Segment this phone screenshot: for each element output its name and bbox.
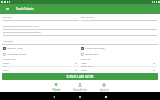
staticText: Sehir (Birden fazla icin virgulle ayirin… bbox=[3, 25, 40, 28]
staticText: Universite bbox=[3, 40, 13, 43]
button[interactable]: SONUCLARI GETIR bbox=[2, 73, 158, 80]
staticText: Favorilerim bbox=[73, 88, 87, 92]
button[interactable]: Ayarlar bbox=[92, 80, 116, 92]
staticText: Yil bbox=[3, 65, 6, 68]
staticText: Max Siralama bbox=[81, 16, 95, 19]
staticText: Ve ucretsiz olanlar bbox=[7, 53, 27, 56]
button[interactable]: Bolum Tipi bbox=[81, 65, 157, 74]
staticText: Siralama Tipi bbox=[3, 58, 16, 61]
button[interactable]: Filtrele bbox=[44, 80, 68, 92]
button[interactable]: Back bbox=[41, 92, 67, 100]
button[interactable]: Home bbox=[67, 92, 93, 100]
button[interactable]: Puan Tipi bbox=[81, 58, 157, 67]
button[interactable]: Yil bbox=[3, 65, 79, 74]
staticText: SONUCLARI GETIR bbox=[66, 75, 94, 79]
staticText: Bolum Tipi bbox=[81, 65, 92, 68]
button[interactable]: Max Siralama bbox=[81, 16, 157, 21]
staticText: Ucretli (Ile birlikte) bbox=[85, 47, 105, 50]
button[interactable]: Open navigation drawer bbox=[0, 4, 14, 14]
staticText: Min Puan bbox=[3, 16, 13, 19]
button[interactable]: Favorilerim bbox=[68, 80, 92, 92]
button[interactable]: Min Puan bbox=[3, 16, 79, 21]
staticText: Hepsi bbox=[81, 62, 153, 65]
button[interactable]: Kktc/yurtdisi bbox=[81, 53, 157, 56]
staticText: Tercih Robotu bbox=[16, 7, 34, 11]
button[interactable]: Devlet (2 Yillik) bbox=[3, 47, 79, 50]
staticText: Hepsi bbox=[3, 69, 75, 72]
button[interactable]: Ve ucretsiz olanlar bbox=[3, 53, 79, 56]
staticText: Hepsi bbox=[81, 69, 153, 72]
staticText: Ayarlar bbox=[100, 88, 109, 92]
staticText: Puan Tipi bbox=[81, 58, 91, 61]
staticText: Hepsi bbox=[3, 62, 75, 65]
staticText: Kktc/yurtdisi bbox=[85, 53, 99, 56]
staticText: Filtrele bbox=[52, 88, 61, 92]
button[interactable]: Bolum (Birden fazla icin virgulle ayirin… bbox=[3, 31, 157, 36]
staticText: Devlet (2 Yillik) bbox=[7, 47, 23, 50]
button[interactable]: Ucretli (Ile birlikte) bbox=[81, 47, 157, 50]
button[interactable]: Sehir (Birden fazla icin virgulle ayirin… bbox=[3, 25, 157, 30]
staticText: Bolum (Birden fazla icin virgulle ayirin… bbox=[3, 31, 41, 34]
button[interactable]: Recents bbox=[93, 92, 119, 100]
button[interactable]: Siralama Tipi bbox=[3, 58, 79, 67]
